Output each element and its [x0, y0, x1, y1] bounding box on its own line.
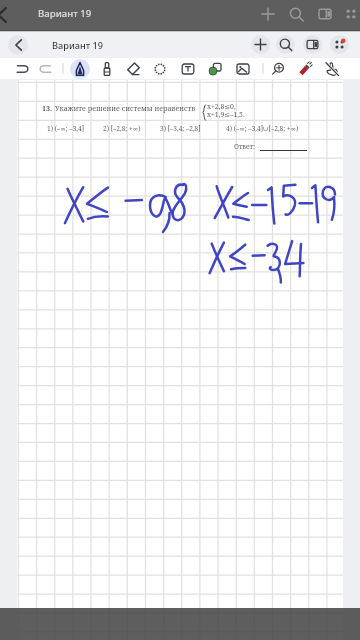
button[interactable]: More: [330, 35, 349, 54]
button[interactable]: Panels: [303, 35, 322, 54]
button[interactable]: Search: [276, 35, 295, 54]
staticText: Укажите решение системы неравенств: [55, 103, 196, 113]
button[interactable]: Highlighter: [97, 59, 117, 79]
staticText: 4) (–∞; –3,4]∪[–2,8; +∞): [226, 124, 299, 133]
staticText: Ответ:: [234, 142, 255, 151]
button[interactable]: Eraser: [123, 59, 143, 79]
staticText: Вариант 19: [52, 39, 103, 52]
staticText: Вариант 19: [38, 7, 92, 20]
button[interactable]: Text: [178, 59, 198, 79]
staticText: 2) [–2,8; +∞): [103, 124, 141, 133]
staticText: 13.: [42, 103, 53, 113]
button[interactable]: Palm rejection: [322, 59, 342, 79]
button[interactable]: Zoom: [268, 59, 288, 79]
button[interactable]: Redo: [35, 59, 55, 79]
button[interactable]: Back: [8, 35, 28, 55]
staticText: x+1,9≤–1,5.: [207, 110, 245, 119]
button[interactable]: Laser pointer: [295, 59, 315, 79]
staticText: x+2,8≤0,: [207, 102, 236, 111]
button[interactable]: Shapes: [205, 59, 225, 79]
staticText: 1) (–∞; –3,4]: [47, 124, 85, 133]
button[interactable]: Insert image: [233, 59, 253, 79]
button[interactable]: Add: [251, 35, 270, 54]
button[interactable]: Pen: [70, 59, 90, 79]
staticText: 3) [–3,4; –2,8]: [160, 124, 201, 133]
button[interactable]: Undo: [13, 59, 33, 79]
button[interactable]: Select: [150, 59, 170, 79]
